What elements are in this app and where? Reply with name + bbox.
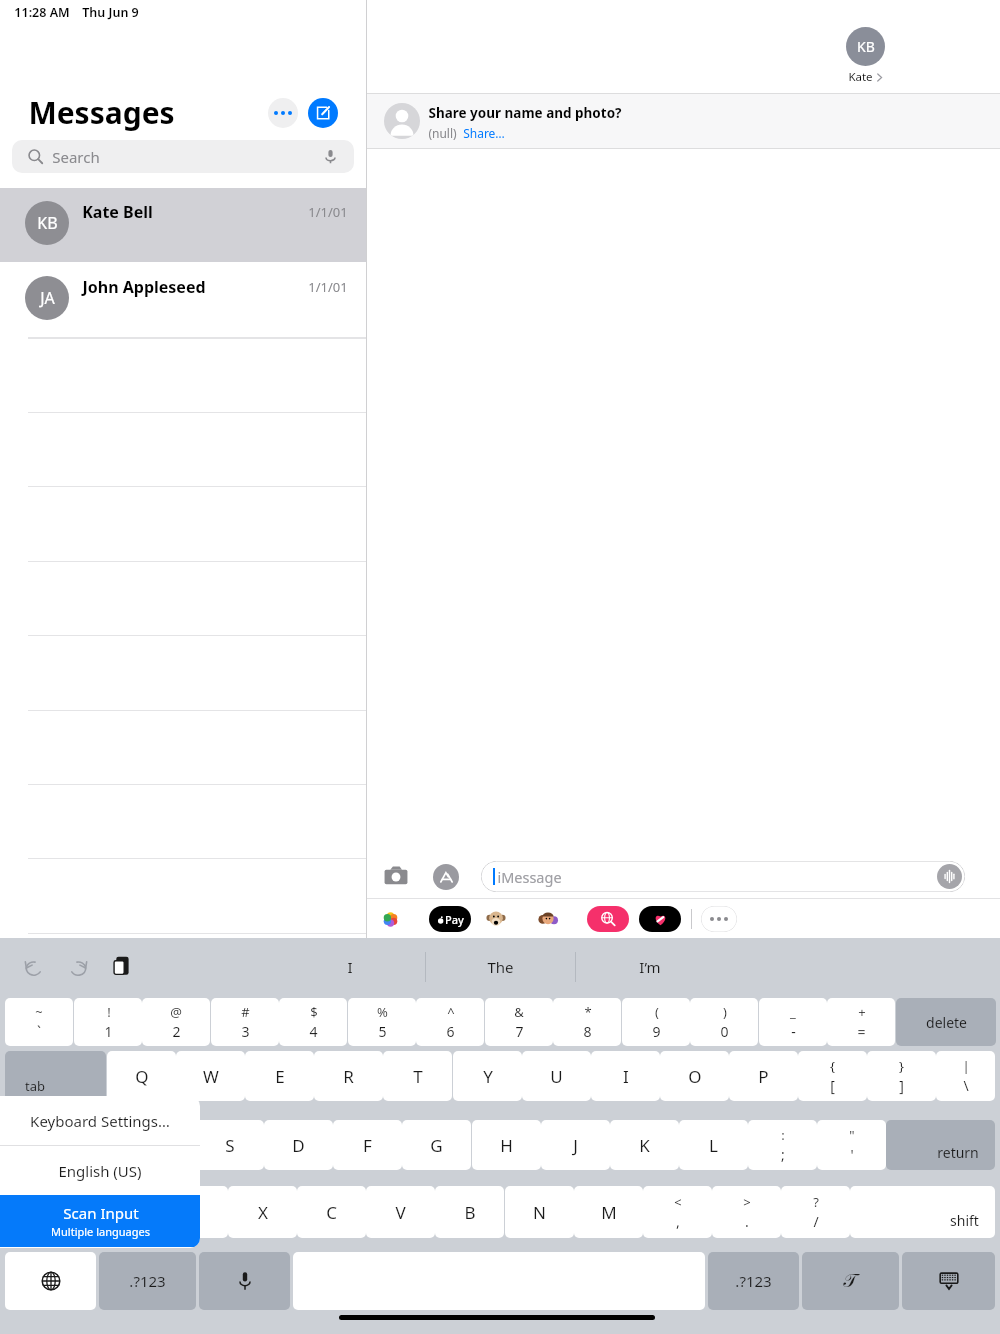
button[interactable]: The bbox=[425, 938, 575, 996]
button[interactable]: Switch keyboard bbox=[5, 1252, 96, 1310]
button[interactable]: & bbox=[485, 998, 553, 1046]
staticText: ? bbox=[813, 1193, 819, 1211]
button[interactable]: E bbox=[245, 1051, 314, 1101]
staticText: (null) bbox=[428, 125, 457, 141]
button[interactable]: O bbox=[660, 1051, 729, 1101]
button[interactable]: Memoji stickers bbox=[535, 906, 561, 932]
button[interactable]: App search bbox=[587, 906, 629, 932]
staticText: D bbox=[292, 1134, 305, 1157]
button[interactable]: ! bbox=[74, 998, 142, 1046]
button[interactable]: + bbox=[827, 998, 895, 1046]
button[interactable]: Y bbox=[453, 1051, 522, 1101]
button[interactable]: @ bbox=[142, 998, 210, 1046]
button[interactable]: Memoji bbox=[483, 906, 509, 932]
button[interactable]: Apple Pay bbox=[429, 906, 471, 932]
button[interactable]: Photos bbox=[377, 906, 403, 932]
button[interactable]: | bbox=[936, 1051, 995, 1101]
button[interactable]: Z bbox=[159, 1186, 228, 1238]
button[interactable]: R bbox=[314, 1051, 383, 1101]
button[interactable]: U bbox=[522, 1051, 591, 1101]
staticText: I’m bbox=[639, 957, 661, 977]
button[interactable]: W bbox=[176, 1051, 245, 1101]
staticText: Kate bbox=[848, 69, 873, 85]
button[interactable]: D bbox=[264, 1120, 333, 1170]
staticText: 4 bbox=[309, 1022, 318, 1041]
button[interactable]: C bbox=[297, 1186, 366, 1238]
button[interactable]: Keyboard Settings… bbox=[0, 1096, 200, 1145]
button[interactable]: Camera bbox=[383, 864, 409, 890]
staticText: 5 bbox=[378, 1022, 387, 1041]
button[interactable]: I bbox=[275, 938, 425, 996]
button[interactable]: iMessage bbox=[481, 861, 965, 892]
button[interactable]: > bbox=[712, 1186, 781, 1238]
button[interactable]: { bbox=[798, 1051, 867, 1101]
button[interactable]: Health app bbox=[639, 906, 681, 932]
button[interactable]: Search bbox=[12, 140, 354, 173]
button[interactable]: return bbox=[886, 1120, 995, 1170]
button[interactable]: ) bbox=[690, 998, 758, 1046]
button[interactable]: .?123 bbox=[708, 1252, 799, 1310]
button[interactable]: delete bbox=[896, 998, 996, 1046]
button[interactable]: G bbox=[402, 1120, 471, 1170]
button[interactable]: shift bbox=[850, 1186, 995, 1238]
button[interactable] bbox=[5, 1120, 125, 1170]
button[interactable]: $ bbox=[279, 998, 347, 1046]
button[interactable]: ^ bbox=[416, 998, 484, 1046]
button[interactable]: Scan Input bbox=[0, 1195, 200, 1247]
button[interactable]: # bbox=[211, 998, 279, 1046]
button[interactable]: tab bbox=[5, 1051, 106, 1101]
button[interactable]: .?123 bbox=[99, 1252, 196, 1310]
button[interactable]: B bbox=[435, 1186, 504, 1238]
button[interactable]: ~ bbox=[5, 998, 73, 1046]
staticText: | bbox=[962, 1057, 970, 1075]
button[interactable]: App Store bbox=[433, 864, 459, 890]
button[interactable]: More apps bbox=[701, 906, 737, 932]
button[interactable]: M bbox=[574, 1186, 643, 1238]
button[interactable]: * bbox=[553, 998, 621, 1046]
button[interactable]: } bbox=[867, 1051, 936, 1101]
button[interactable]: % bbox=[348, 998, 416, 1046]
button[interactable]: H bbox=[472, 1120, 541, 1170]
button[interactable]: Dictate bbox=[199, 1252, 290, 1310]
button[interactable]: X bbox=[228, 1186, 297, 1238]
button[interactable]: I bbox=[591, 1051, 660, 1101]
button[interactable]: < bbox=[643, 1186, 712, 1238]
button[interactable]: : bbox=[748, 1120, 817, 1170]
button[interactable]: Undo bbox=[22, 956, 46, 980]
button[interactable]: Share… bbox=[463, 125, 505, 141]
button[interactable]: KB bbox=[846, 27, 885, 85]
button[interactable]: More options bbox=[268, 98, 298, 128]
button[interactable]: Hide keyboard bbox=[902, 1252, 995, 1310]
button[interactable]: L bbox=[679, 1120, 748, 1170]
staticText: & bbox=[514, 1003, 524, 1021]
button[interactable]: S bbox=[195, 1120, 264, 1170]
button[interactable] bbox=[5, 1186, 158, 1238]
button[interactable]: K bbox=[610, 1120, 679, 1170]
button[interactable]: ( bbox=[622, 998, 690, 1046]
button[interactable]: English (US) bbox=[0, 1146, 200, 1195]
button[interactable]: Q bbox=[107, 1051, 176, 1101]
button[interactable]: " bbox=[817, 1120, 886, 1170]
staticText: . bbox=[745, 1212, 749, 1231]
button[interactable]: _ bbox=[759, 998, 827, 1046]
button[interactable]: T bbox=[383, 1051, 452, 1101]
button[interactable]: Paste bbox=[111, 955, 133, 977]
button[interactable]: JA bbox=[0, 263, 366, 337]
staticText: 11:28 AM bbox=[14, 4, 70, 21]
staticText: 8 bbox=[583, 1022, 592, 1041]
button[interactable]: V bbox=[366, 1186, 435, 1238]
button[interactable]: P bbox=[729, 1051, 798, 1101]
button[interactable]: J bbox=[541, 1120, 610, 1170]
button[interactable]: ? bbox=[781, 1186, 850, 1238]
staticText: ; bbox=[781, 1145, 785, 1164]
button[interactable]: Audio message bbox=[937, 864, 962, 889]
button[interactable]: F bbox=[333, 1120, 402, 1170]
button[interactable]: Compose new message bbox=[308, 98, 338, 128]
button[interactable]: I’m bbox=[575, 938, 725, 996]
button[interactable]: A bbox=[126, 1120, 195, 1170]
button[interactable]: Redo bbox=[66, 956, 90, 980]
button[interactable]: N bbox=[505, 1186, 574, 1238]
button[interactable]: 𝒯 bbox=[802, 1252, 899, 1310]
button[interactable]: KB bbox=[0, 188, 366, 262]
